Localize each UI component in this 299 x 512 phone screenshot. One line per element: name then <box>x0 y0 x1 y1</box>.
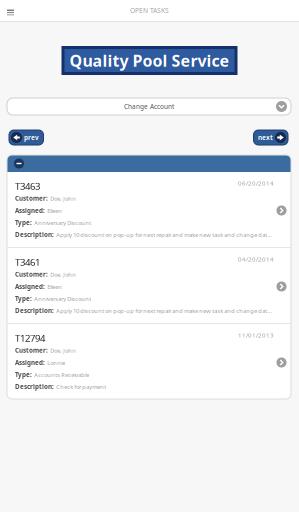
staticText: Assigned: <box>15 282 45 291</box>
staticText: Eileen <box>47 207 62 215</box>
staticText: Apply 10 discount on pop-up for next rep… <box>56 231 272 239</box>
staticText: prev <box>24 133 39 142</box>
staticText: Doe, John <box>50 271 76 278</box>
staticText: Type: <box>15 370 32 379</box>
staticText: 06/20/2014 <box>238 179 274 187</box>
staticText: OPEN TASKS <box>130 6 169 15</box>
staticText: Customer: <box>15 270 48 279</box>
staticText: 11/01/2013 <box>238 331 274 339</box>
staticText: T3463 <box>15 179 40 192</box>
staticText: Check for payment <box>56 383 106 391</box>
staticText: Customer: <box>15 194 48 203</box>
button[interactable]: prev <box>9 130 43 145</box>
staticText: Eileen <box>47 283 62 291</box>
staticText: Description: <box>15 230 54 239</box>
button[interactable]: T3461 <box>7 248 291 323</box>
staticText: T3461 <box>15 255 40 268</box>
staticText: Lonnie <box>47 359 65 367</box>
staticText: Assigned: <box>15 206 45 215</box>
staticText: Anniversary Discount <box>34 219 91 227</box>
staticText: Quality Pool Service <box>69 50 229 71</box>
staticText: Anniversary Discount <box>34 295 91 303</box>
button[interactable]: Change Account <box>7 98 291 115</box>
staticText: Accounts Receivable <box>34 371 89 379</box>
staticText: Assigned: <box>15 358 45 367</box>
staticText: Customer: <box>15 346 48 355</box>
staticText: Type: <box>15 218 32 227</box>
staticText: Doe, John <box>50 195 76 202</box>
staticText: Type: <box>15 294 32 303</box>
button[interactable]: Menu <box>0 0 21 21</box>
button[interactable]: Collapse section <box>7 155 291 172</box>
button[interactable]: T3463 <box>7 172 291 247</box>
staticText: Change Account <box>124 102 174 111</box>
staticText: Doe, John <box>50 347 76 354</box>
staticText: T12794 <box>15 331 45 344</box>
staticText: Description: <box>15 382 54 391</box>
button[interactable]: next <box>253 130 288 145</box>
staticText: next <box>258 133 273 142</box>
staticText: Apply 10 discount on pop-up for next rep… <box>56 307 272 315</box>
staticText: 04/20/2014 <box>238 255 274 263</box>
staticText: Description: <box>15 306 54 315</box>
button[interactable]: T12794 <box>7 324 291 399</box>
